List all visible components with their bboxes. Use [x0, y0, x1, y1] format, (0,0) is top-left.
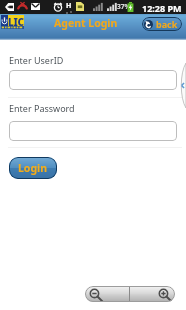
- staticText: H: [66, 1, 72, 11]
- button[interactable]: back: [142, 17, 182, 31]
- button[interactable]: Zoom in: [130, 286, 175, 302]
- staticText: back: [156, 18, 178, 30]
- staticText: LIC: [8, 15, 24, 26]
- staticText: Enter Password: [9, 102, 75, 114]
- button[interactable]: Text input: [9, 121, 177, 141]
- button[interactable]: Text input: [9, 70, 177, 90]
- staticText: Enter UserID: [9, 54, 64, 66]
- staticText: 12:28 PM: [142, 2, 182, 14]
- staticText: Login: [18, 161, 48, 175]
- staticText: 37%: [117, 2, 131, 11]
- staticText: Agent Login: [54, 16, 118, 30]
- button[interactable]: Open side panel: [179, 63, 186, 108]
- button[interactable]: Zoom out: [85, 286, 129, 302]
- button[interactable]: Login: [9, 157, 57, 179]
